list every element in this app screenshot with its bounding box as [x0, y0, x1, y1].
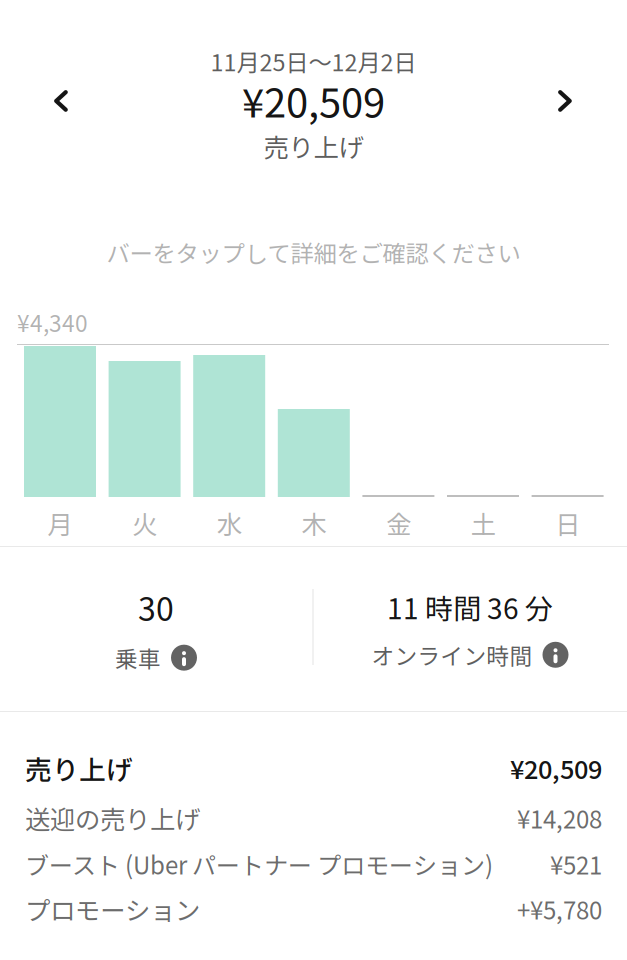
- staticText: 木: [301, 505, 326, 541]
- staticText: 11 時間 36 分: [387, 587, 553, 627]
- button[interactable]: 送迎の売り上げ: [0, 795, 627, 841]
- staticText: オンライン時間: [371, 638, 532, 671]
- staticText: 売り上げ: [25, 749, 133, 787]
- staticText: ¥521: [550, 847, 602, 881]
- staticText: 乗車: [115, 641, 161, 674]
- button[interactable]: 火曜日の売り上げ: [109, 361, 181, 497]
- staticText: プロモーション: [25, 891, 200, 927]
- staticText: ¥4,340: [17, 306, 88, 338]
- staticText: バーをタップして詳細をご確認ください: [106, 235, 520, 269]
- button[interactable]: 売り上げ: [0, 745, 627, 791]
- staticText: 30: [138, 584, 174, 630]
- staticText: ¥20,509: [510, 750, 602, 786]
- staticText: 送迎の売り上げ: [25, 800, 200, 836]
- button[interactable]: 前の週: [29, 69, 93, 133]
- staticText: 月: [47, 505, 72, 541]
- staticText: +¥5,780: [517, 892, 602, 926]
- staticText: ¥14,208: [517, 801, 602, 835]
- staticText: 水: [217, 505, 242, 541]
- staticText: 土: [470, 505, 495, 541]
- staticText: 火: [132, 505, 157, 541]
- staticText: 売り上げ: [263, 128, 363, 164]
- button[interactable]: 次の週: [533, 69, 597, 133]
- staticText: 日: [555, 505, 580, 541]
- staticText: ブースト (Uber パートナー プロモーション): [25, 847, 493, 881]
- staticText: 金: [386, 505, 411, 541]
- staticText: ¥20,509: [242, 71, 385, 129]
- button[interactable]: ブースト (Uber パートナー プロモーション): [0, 841, 627, 887]
- staticText: 11月25日〜12月2日: [210, 44, 416, 78]
- button[interactable]: プロモーション: [0, 886, 627, 932]
